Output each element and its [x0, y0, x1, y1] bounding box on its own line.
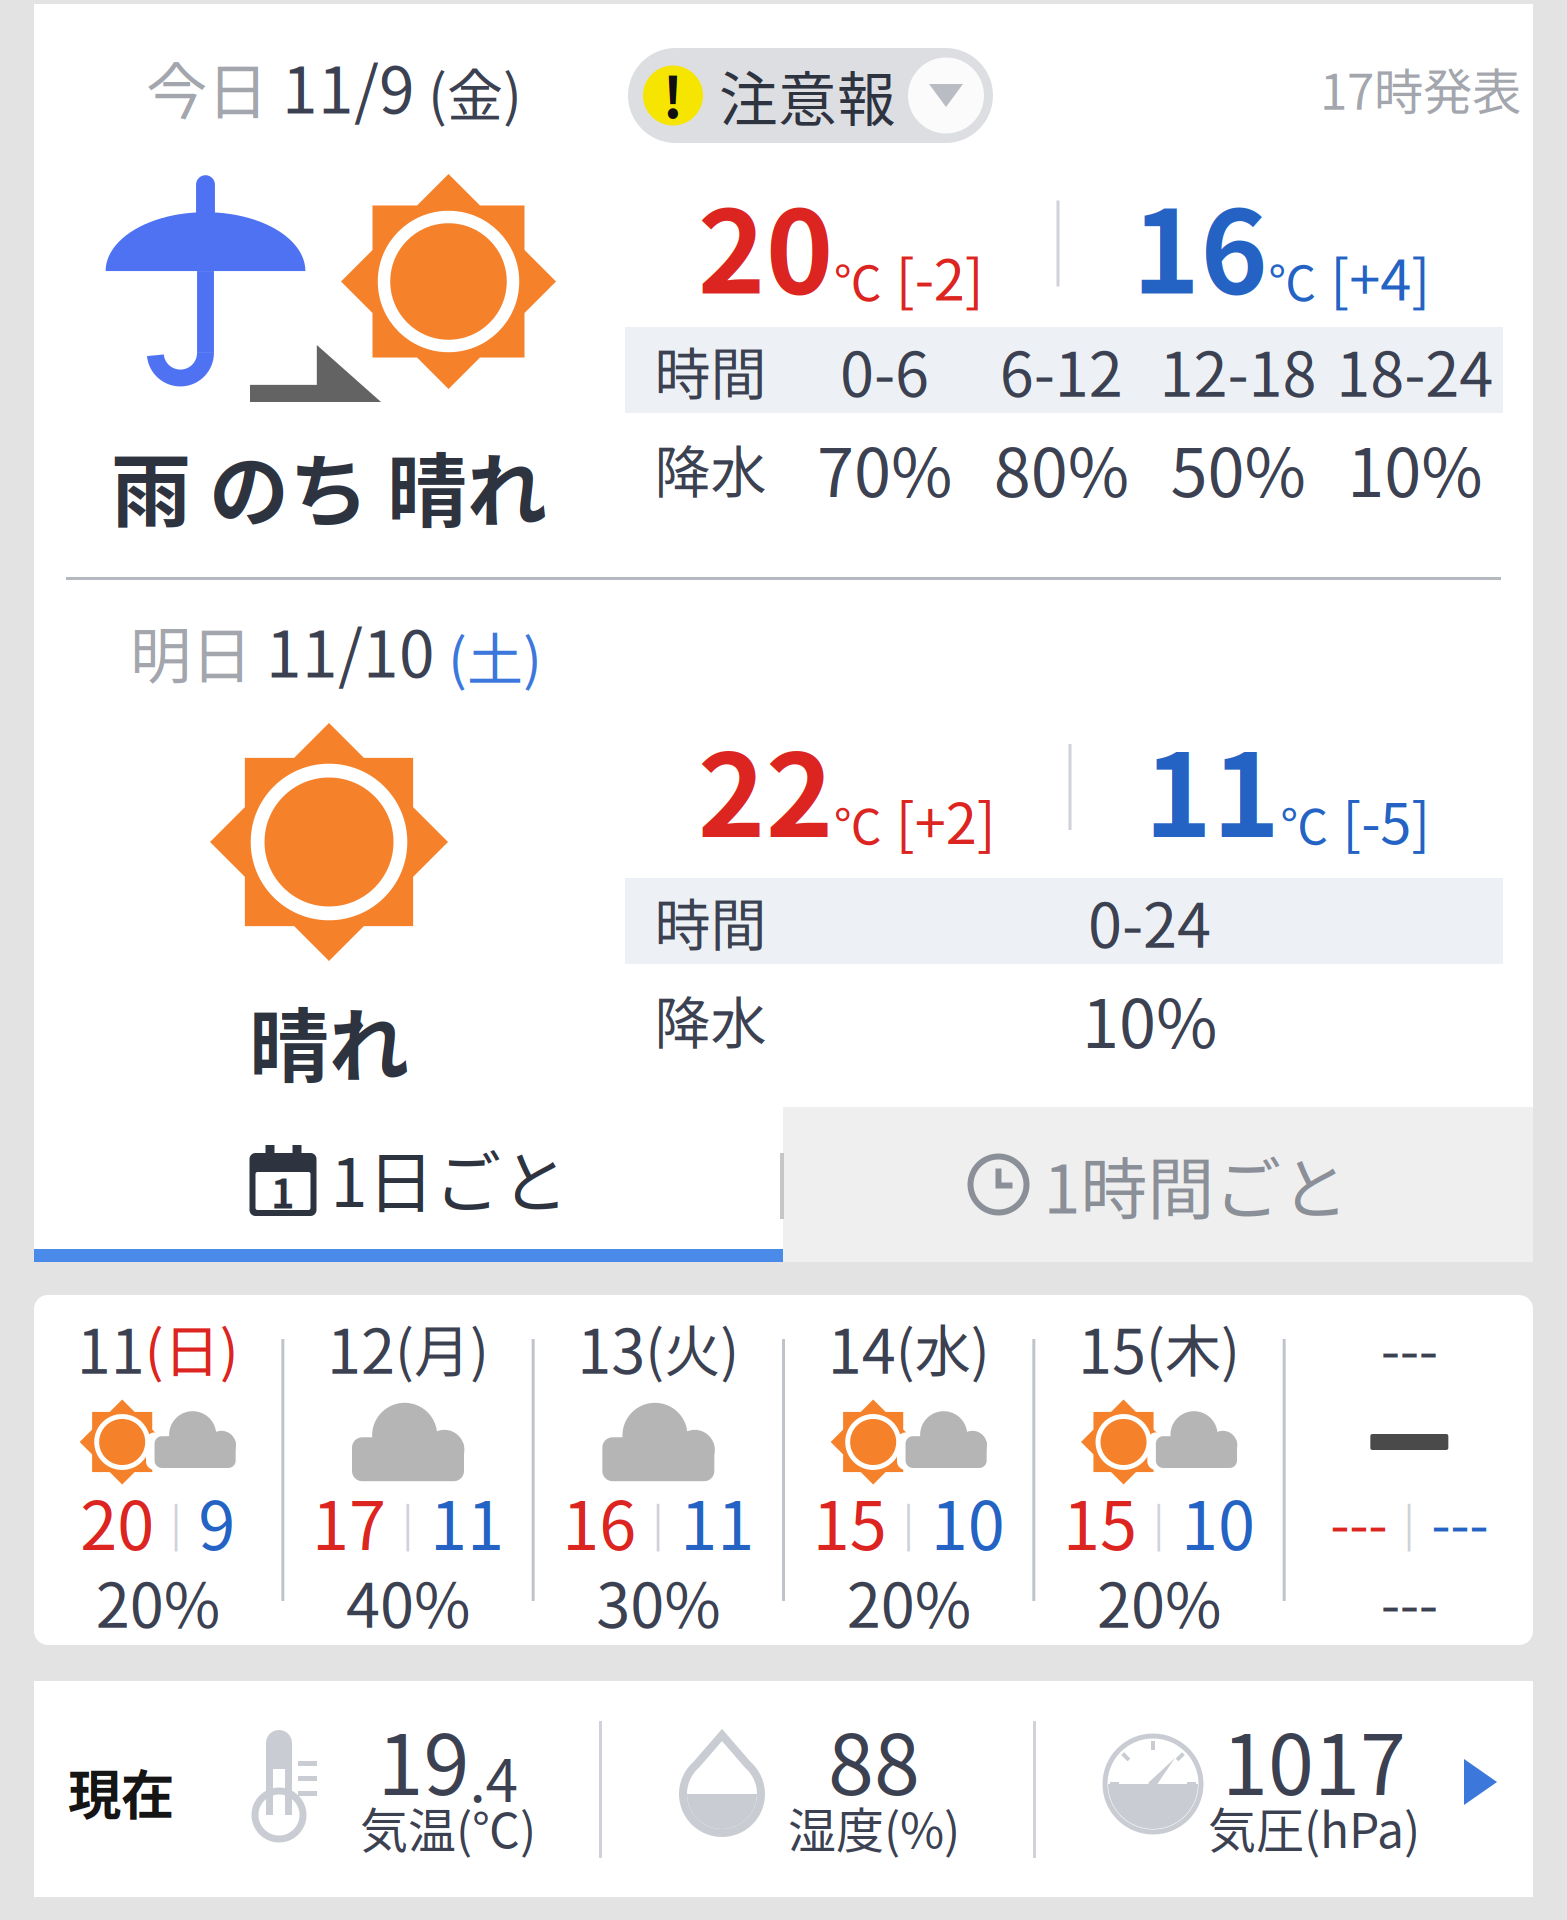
- staticText: 12: [327, 1303, 395, 1391]
- staticText: 明日: [130, 607, 252, 696]
- staticText: 9: [198, 1473, 235, 1569]
- staticText: 11: [680, 1473, 754, 1569]
- staticText: (日): [145, 1306, 239, 1388]
- staticText: 40%: [346, 1557, 470, 1645]
- staticText: 11: [77, 1303, 145, 1391]
- staticText: 15: [1063, 1473, 1137, 1569]
- staticText: 15: [1078, 1303, 1146, 1391]
- staticText: ---: [1431, 1480, 1488, 1562]
- staticText: 12-18: [1159, 326, 1316, 414]
- staticText: 50%: [1170, 420, 1305, 516]
- staticText: 1日ごと: [330, 1130, 568, 1226]
- staticText: 11/9: [268, 39, 415, 132]
- staticText: 晴れ: [249, 982, 409, 1098]
- button[interactable]: 15: [1035, 1295, 1283, 1645]
- staticText: .4: [469, 1734, 518, 1819]
- staticText: ℃: [1268, 245, 1316, 314]
- staticText: [+2]: [896, 779, 996, 860]
- staticText: 0-24: [1088, 877, 1211, 965]
- staticText: 1時間ごと: [1043, 1136, 1348, 1233]
- staticText: 20: [80, 1473, 154, 1569]
- staticText: [+4]: [1330, 235, 1430, 316]
- staticText: 22: [698, 704, 834, 870]
- staticText: 20%: [847, 1557, 971, 1645]
- staticText: 18-24: [1336, 326, 1493, 414]
- staticText: |: [402, 1490, 414, 1552]
- button[interactable]: !: [628, 48, 993, 143]
- staticText: 10%: [1082, 971, 1217, 1067]
- staticText: 16: [562, 1473, 636, 1569]
- staticText: ---: [1381, 1560, 1438, 1642]
- staticText: 気圧(hPa): [1208, 1792, 1420, 1862]
- staticText: (水): [896, 1306, 990, 1388]
- staticText: ℃: [834, 245, 882, 314]
- staticText: 10: [1181, 1473, 1255, 1569]
- staticText: |: [903, 1490, 915, 1552]
- staticText: |: [170, 1490, 182, 1552]
- staticText: |: [652, 1490, 664, 1552]
- button[interactable]: 1時間ごと: [783, 1107, 1533, 1262]
- staticText: (月): [395, 1306, 489, 1388]
- staticText: 30%: [596, 1557, 720, 1645]
- staticText: 70%: [817, 420, 952, 516]
- staticText: 20: [698, 160, 834, 326]
- staticText: 降水: [654, 427, 766, 509]
- staticText: 気温(℃): [360, 1792, 536, 1862]
- staticText: 80%: [994, 420, 1129, 516]
- staticText: 11: [1144, 704, 1280, 870]
- button[interactable]: 14: [785, 1295, 1032, 1645]
- button[interactable]: 12: [284, 1295, 532, 1645]
- staticText: ---: [1330, 1480, 1387, 1562]
- staticText: 湿度(%): [788, 1792, 960, 1862]
- staticText: 現在: [68, 1753, 174, 1830]
- staticText: !: [662, 53, 683, 134]
- staticText: 17: [312, 1473, 386, 1569]
- staticText: 雨 のち 晴れ: [111, 427, 547, 543]
- button[interactable]: 1: [34, 1107, 783, 1262]
- staticText: 時間: [654, 329, 766, 411]
- staticText: 13: [577, 1303, 645, 1391]
- staticText: 14: [828, 1303, 896, 1391]
- staticText: (火): [645, 1306, 739, 1388]
- staticText: [-5]: [1342, 779, 1430, 860]
- staticText: (金): [415, 51, 522, 132]
- staticText: 今日: [146, 43, 268, 132]
- staticText: 17時発表: [1320, 53, 1521, 124]
- staticText: |: [1403, 1490, 1415, 1552]
- staticText: 11: [430, 1473, 504, 1569]
- staticText: 注意報: [719, 53, 896, 138]
- button[interactable]: 現在: [0, 1681, 1567, 1897]
- staticText: 降水: [654, 978, 766, 1060]
- staticText: [-2]: [896, 235, 984, 316]
- staticText: 時間: [654, 880, 766, 962]
- staticText: 0-6: [840, 326, 929, 414]
- staticText: 1017: [1222, 1699, 1406, 1819]
- staticText: 6-12: [1000, 326, 1123, 414]
- staticText: ℃: [834, 788, 882, 858]
- staticText: ---: [1381, 1306, 1438, 1388]
- staticText: 20%: [96, 1557, 220, 1645]
- staticText: 20%: [1097, 1557, 1221, 1645]
- button[interactable]: 13: [535, 1295, 782, 1645]
- staticText: 15: [813, 1473, 887, 1569]
- staticText: 19: [377, 1699, 469, 1819]
- button[interactable]: 11: [34, 1295, 281, 1645]
- staticText: 10: [931, 1473, 1005, 1569]
- staticText: (土): [435, 615, 542, 696]
- staticText: 10%: [1347, 420, 1482, 516]
- staticText: ℃: [1280, 788, 1328, 858]
- staticText: 11/10: [252, 603, 435, 696]
- staticText: 1: [271, 1162, 295, 1220]
- staticText: 88: [828, 1699, 920, 1819]
- staticText: (木): [1146, 1306, 1240, 1388]
- staticText: |: [1153, 1490, 1165, 1552]
- staticText: 16: [1132, 160, 1268, 326]
